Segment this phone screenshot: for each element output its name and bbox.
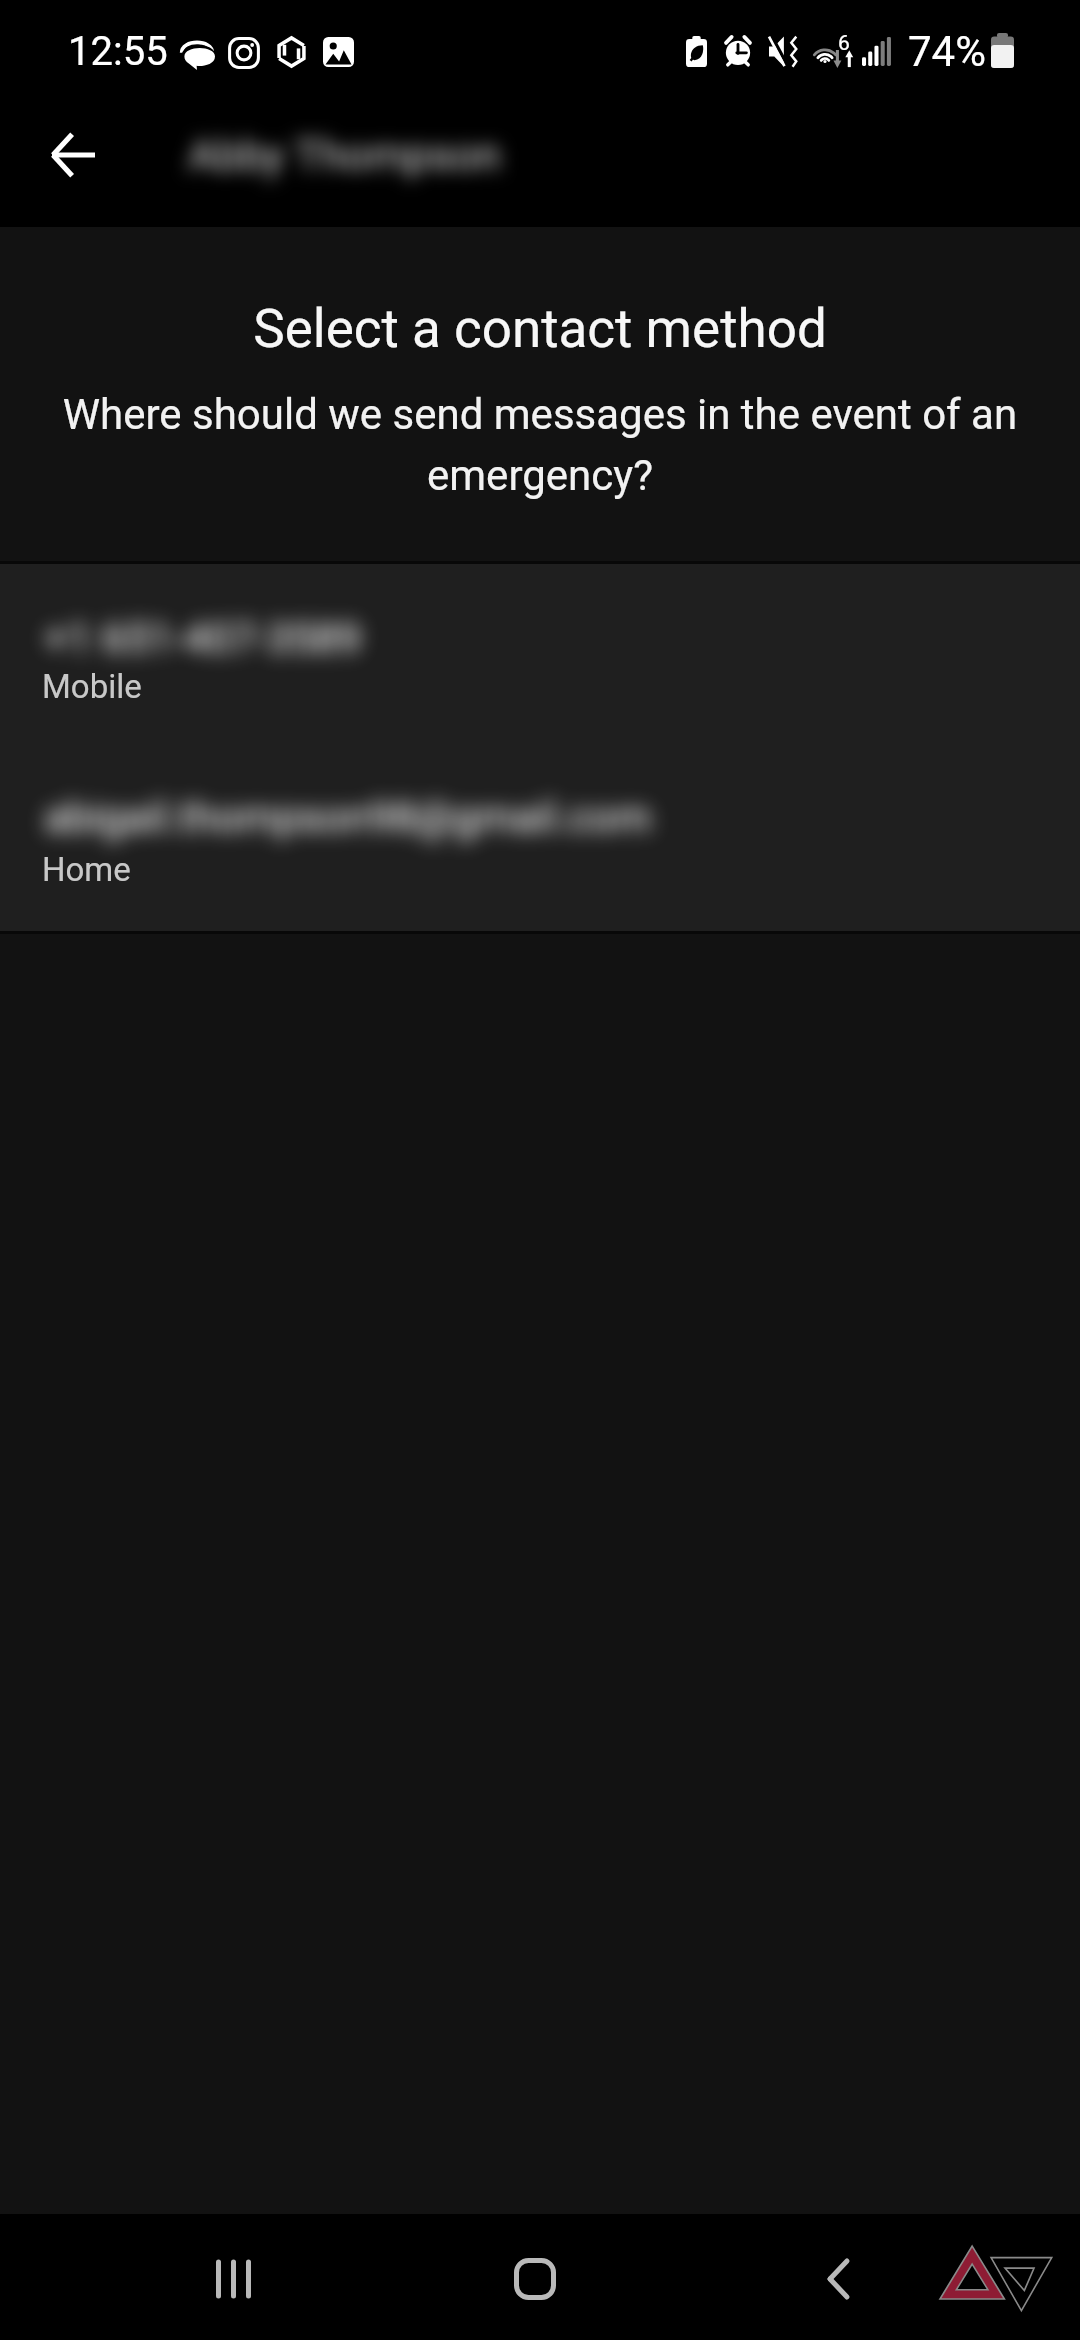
staticText: Select a contact method <box>0 298 1080 360</box>
button[interactable]: Back <box>778 2235 898 2323</box>
staticText: 12:55 <box>68 28 168 75</box>
staticText: Abby Thompson <box>188 130 501 180</box>
staticText: +1 651-407-3589 <box>44 614 362 663</box>
staticText: Where should we send messages in the eve… <box>58 390 1022 501</box>
button[interactable]: +1 651-407-3589 <box>0 564 1080 751</box>
staticText: Mobile <box>42 667 142 706</box>
staticText: Home <box>42 850 131 889</box>
staticText: 6 <box>838 31 850 56</box>
button[interactable]: abigail.thompson98@gmail.com <box>0 751 1080 931</box>
button[interactable]: Recent apps <box>173 2235 293 2323</box>
button[interactable]: Home <box>475 2235 595 2323</box>
staticText: 74% <box>908 27 986 76</box>
button[interactable]: Back <box>25 107 121 203</box>
staticText: abigail.thompson98@gmail.com <box>44 793 652 842</box>
